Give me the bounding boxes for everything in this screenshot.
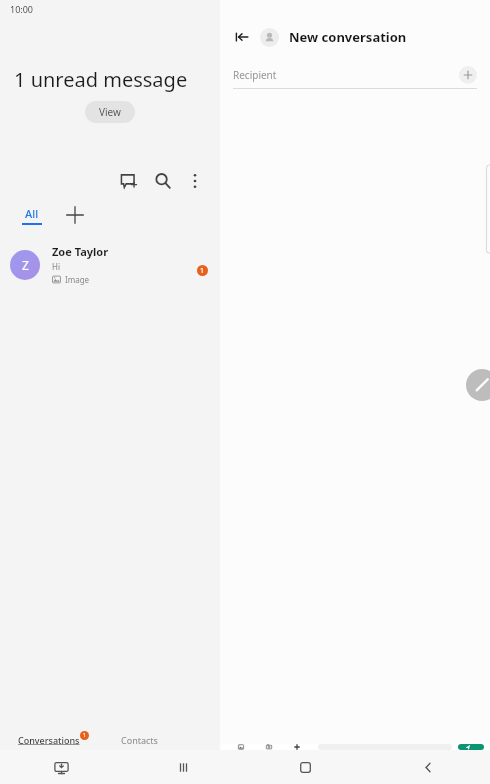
staticText: 10:00 (10, 3, 34, 15)
button[interactable]: More (290, 744, 310, 750)
staticText: Recipient (233, 68, 277, 82)
staticText: New conversation (289, 28, 407, 46)
button[interactable]: Send (458, 744, 484, 750)
staticText: Zoe Taylor (52, 244, 109, 259)
button[interactable]: Recents (122, 750, 244, 784)
button[interactable]: Compose (466, 369, 490, 401)
button[interactable]: Contacts (121, 734, 158, 746)
button[interactable]: Conversations (18, 734, 89, 746)
button[interactable]: Search (150, 168, 176, 194)
button[interactable]: Contact (260, 28, 279, 47)
button[interactable]: Screenshot (0, 750, 122, 784)
staticText: View (99, 105, 121, 119)
staticText: 1 (83, 732, 86, 739)
button[interactable]: Back (367, 750, 490, 784)
button[interactable]: Home (244, 750, 367, 784)
staticText: Image (65, 274, 90, 285)
button[interactable]: Add tab (64, 204, 86, 226)
button[interactable]: Z (0, 240, 220, 289)
staticText: Conversations (18, 734, 80, 746)
button[interactable]: Collapse (232, 27, 252, 47)
staticText: 1 unread message (14, 66, 188, 93)
button[interactable]: More options (182, 168, 208, 194)
button[interactable]: All (22, 206, 42, 225)
staticText: Z (22, 257, 29, 273)
button[interactable]: View (85, 101, 135, 123)
staticText: All (25, 206, 39, 221)
staticText: Contacts (121, 734, 158, 746)
button[interactable]: Gallery (234, 744, 254, 750)
staticText: Hi (52, 261, 60, 272)
button[interactable]: New message (116, 168, 142, 194)
button[interactable]: Add recipient (459, 66, 477, 84)
button[interactable]: Camera (262, 744, 282, 750)
staticText: 1 (200, 266, 205, 276)
